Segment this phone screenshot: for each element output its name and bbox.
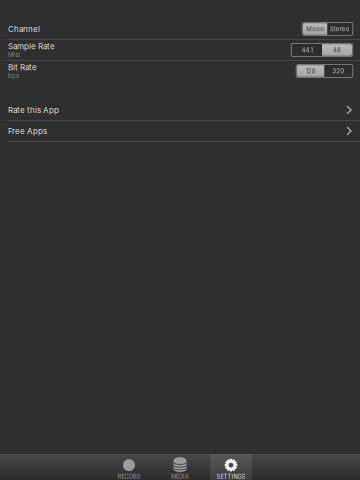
button[interactable]: Mono: [303, 23, 327, 35]
staticText: 320: [332, 67, 344, 75]
staticText: 48: [333, 46, 341, 54]
staticText: SETTINGS: [216, 473, 245, 480]
button[interactable]: MEDIA: [159, 454, 201, 480]
staticText: bps: [8, 72, 19, 79]
button[interactable]: 44.1: [292, 44, 322, 56]
staticText: Sample Rate: [8, 41, 55, 51]
staticText: Mono: [306, 25, 324, 33]
button[interactable]: RECORD: [108, 454, 150, 480]
button[interactable]: 48: [322, 44, 352, 56]
staticText: MHz: [8, 51, 20, 58]
staticText: Stereo: [330, 25, 350, 33]
staticText: MEDIA: [171, 473, 189, 480]
staticText: Bit Rate: [8, 62, 37, 72]
button[interactable]: 320: [324, 65, 352, 77]
staticText: 128: [306, 67, 316, 75]
staticText: Channel: [8, 24, 40, 34]
button[interactable]: Rate this App: [0, 100, 360, 120]
staticText: 44.1: [301, 46, 312, 54]
staticText: Free Apps: [8, 126, 47, 136]
staticText: RECORD: [117, 473, 140, 480]
button[interactable]: Free Apps: [0, 121, 360, 141]
button[interactable]: 128: [297, 65, 324, 77]
button[interactable]: Stereo: [327, 23, 352, 35]
button[interactable]: SETTINGS: [210, 454, 252, 480]
staticText: Rate this App: [8, 105, 59, 115]
